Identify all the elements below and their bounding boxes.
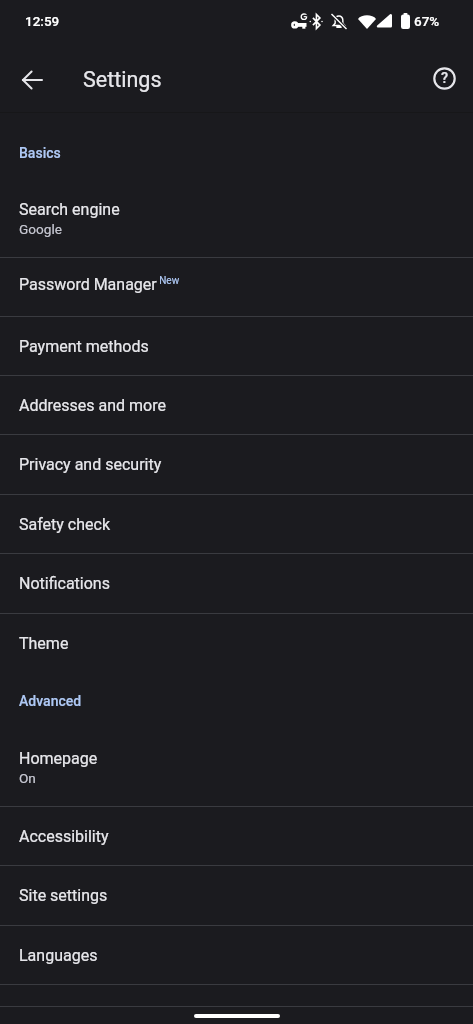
staticText: ? — [441, 70, 449, 87]
button[interactable]: Homepage — [0, 747, 473, 806]
staticText: Theme — [19, 634, 69, 653]
staticText: On — [19, 770, 36, 786]
staticText: Advanced — [19, 693, 82, 709]
button[interactable]: Privacy and security — [0, 435, 473, 494]
staticText: Google — [19, 221, 62, 237]
button[interactable]: Theme — [0, 614, 473, 673]
staticText: Privacy and security — [19, 455, 162, 474]
button[interactable]: Addresses and more — [0, 376, 473, 434]
button[interactable]: Search engine — [0, 198, 473, 257]
button[interactable]: Site settings — [0, 866, 473, 925]
staticText: Search engine — [19, 200, 120, 219]
staticText: Password Manager New — [19, 275, 180, 294]
button[interactable]: Payment methods — [0, 317, 473, 375]
staticText: 12:59 — [25, 13, 60, 29]
staticText: Payment methods — [19, 337, 149, 356]
staticText: Settings — [83, 67, 162, 92]
button[interactable]: Navigate up — [9, 57, 55, 103]
button[interactable]: Safety check — [0, 495, 473, 553]
button[interactable]: Accessibility — [0, 807, 473, 865]
staticText: Safety check — [19, 515, 110, 534]
staticText: Accessibility — [19, 827, 109, 846]
button[interactable]: Languages — [0, 926, 473, 984]
staticText: Site settings — [19, 886, 108, 905]
staticText: Notifications — [19, 574, 110, 593]
button[interactable]: Notifications — [0, 554, 473, 613]
button[interactable]: Help and feedback — [422, 56, 467, 101]
staticText: Basics — [19, 145, 61, 161]
staticText: Homepage — [19, 749, 98, 768]
button[interactable]: Password Manager New — [0, 258, 473, 316]
staticText: Addresses and more — [19, 396, 166, 415]
staticText: 67% — [414, 13, 440, 29]
staticText: Languages — [19, 946, 98, 965]
